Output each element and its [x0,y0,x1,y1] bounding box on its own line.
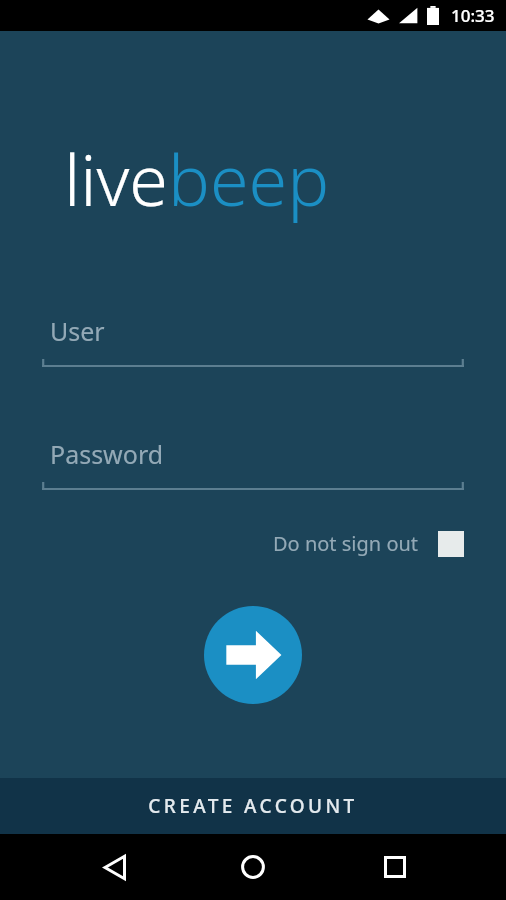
staticText: 10:33 [451,4,495,27]
button[interactable]: Back [90,842,140,892]
button[interactable]: Home [228,842,278,892]
staticText: CREATE ACCOUNT [148,793,358,819]
button[interactable]: CREATE ACCOUNT [0,778,506,834]
staticText: Do not sign out [273,530,419,557]
staticText: beep [168,131,330,226]
button[interactable]: User [42,314,464,368]
staticText: live [64,131,168,226]
button[interactable]: Do not sign out [271,525,466,562]
button[interactable]: Sign in [204,606,302,704]
button[interactable]: Recent apps [370,842,420,892]
button[interactable]: Password [42,437,464,491]
staticText: User [50,314,105,348]
staticText: Password [50,437,164,471]
